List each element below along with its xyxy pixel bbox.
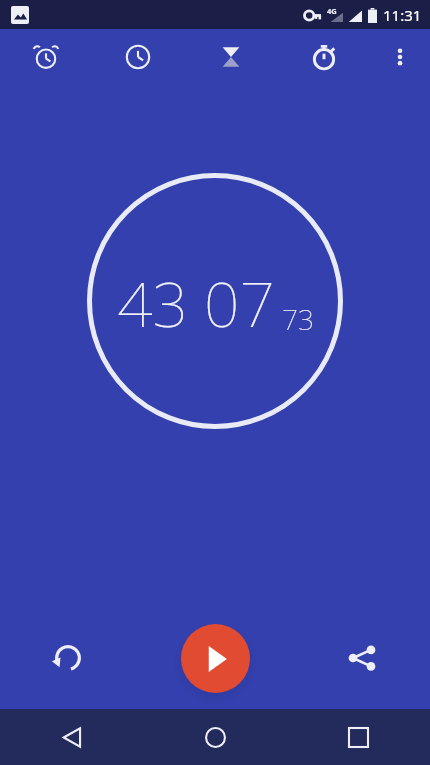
button[interactable]: Recent apps [287,709,430,765]
button[interactable]: Reset [40,630,96,686]
button[interactable]: Timer [184,29,277,85]
button[interactable]: Back [0,709,144,765]
button[interactable]: Start [181,624,250,693]
staticText: 43 07 [117,261,275,345]
button[interactable]: Stopwatch [277,29,370,85]
button[interactable]: Home [144,709,287,765]
staticText: 11:31 [383,5,422,25]
button[interactable]: Share [334,630,390,686]
button[interactable]: Alarm [0,29,92,85]
button[interactable]: Clock [92,29,184,85]
staticText: 73 [282,300,314,338]
staticText: 4G [327,6,337,16]
button[interactable]: More options [370,29,430,85]
